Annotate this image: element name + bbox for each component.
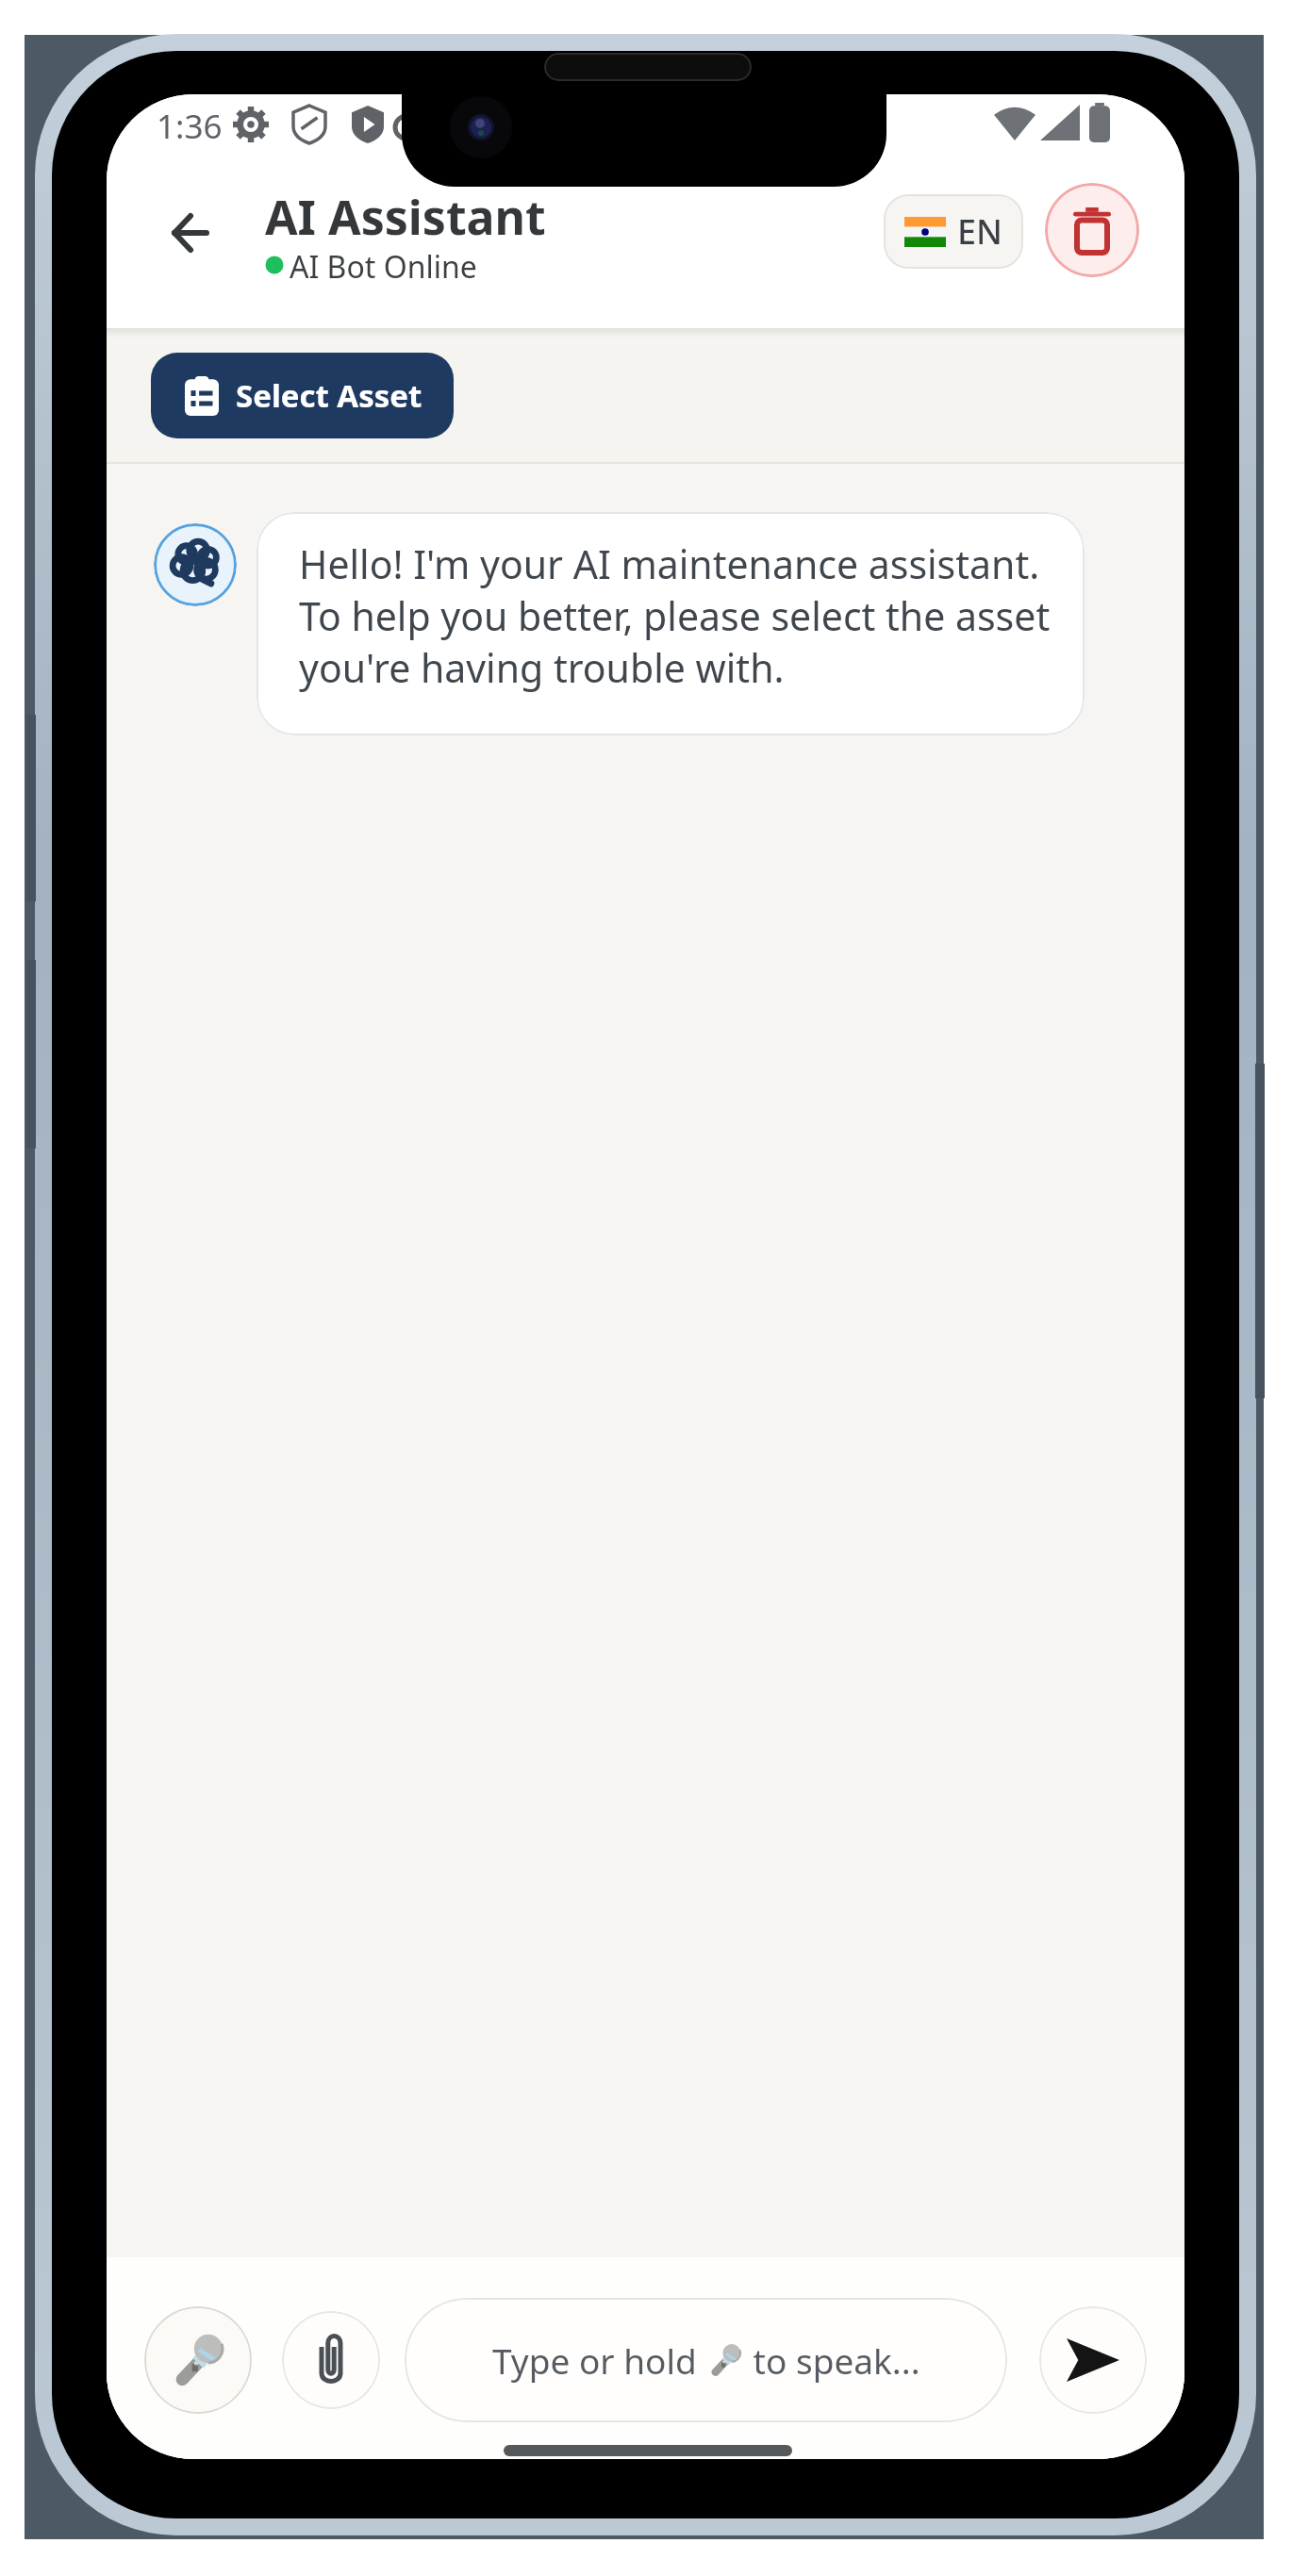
staticText: AI Assistant — [265, 185, 546, 249]
button[interactable]: Select Asset — [151, 353, 454, 438]
button[interactable] — [144, 2306, 252, 2414]
staticText: Type or hold — [492, 2337, 706, 2384]
button[interactable]: Type or hold — [405, 2298, 1007, 2422]
button[interactable] — [282, 2311, 380, 2409]
button[interactable] — [1039, 2306, 1147, 2414]
staticText: Select Asset — [236, 374, 422, 417]
staticText: EN — [957, 208, 1002, 255]
staticText: Hello! I'm your AI maintenance assistant… — [299, 537, 1051, 694]
staticText: 1:36 — [157, 104, 223, 149]
button[interactable] — [1045, 183, 1139, 277]
button[interactable]: EN — [884, 194, 1023, 269]
staticText: to speak... — [744, 2337, 920, 2384]
button[interactable] — [172, 211, 209, 255]
staticText: AI Bot Online — [290, 246, 477, 288]
